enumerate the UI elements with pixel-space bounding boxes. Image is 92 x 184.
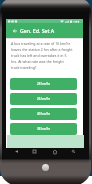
staticText: 28 km/hr	[37, 82, 51, 86]
staticText: A bus traveling at a rate of 16 km/hr le…	[11, 41, 73, 70]
staticText: 26 km/hr	[37, 97, 51, 101]
staticText: 38 km/hr	[37, 127, 51, 131]
staticText: 40 km/hr	[37, 112, 51, 116]
button[interactable]: Menu	[29, 146, 40, 157]
button[interactable]: 28 km/hr	[10, 78, 77, 90]
button[interactable]: Search	[68, 146, 79, 157]
button[interactable]: 38 km/hr	[10, 123, 77, 135]
button[interactable]: Home	[49, 146, 60, 157]
button[interactable]: Back	[11, 146, 22, 157]
button[interactable]: Back	[8, 23, 21, 38]
staticText: Gen. Ed. Set A	[20, 27, 55, 34]
button[interactable]: 40 km/hr	[10, 108, 77, 120]
button[interactable]: Home button	[42, 164, 49, 171]
button[interactable]: 26 km/hr	[10, 93, 77, 105]
